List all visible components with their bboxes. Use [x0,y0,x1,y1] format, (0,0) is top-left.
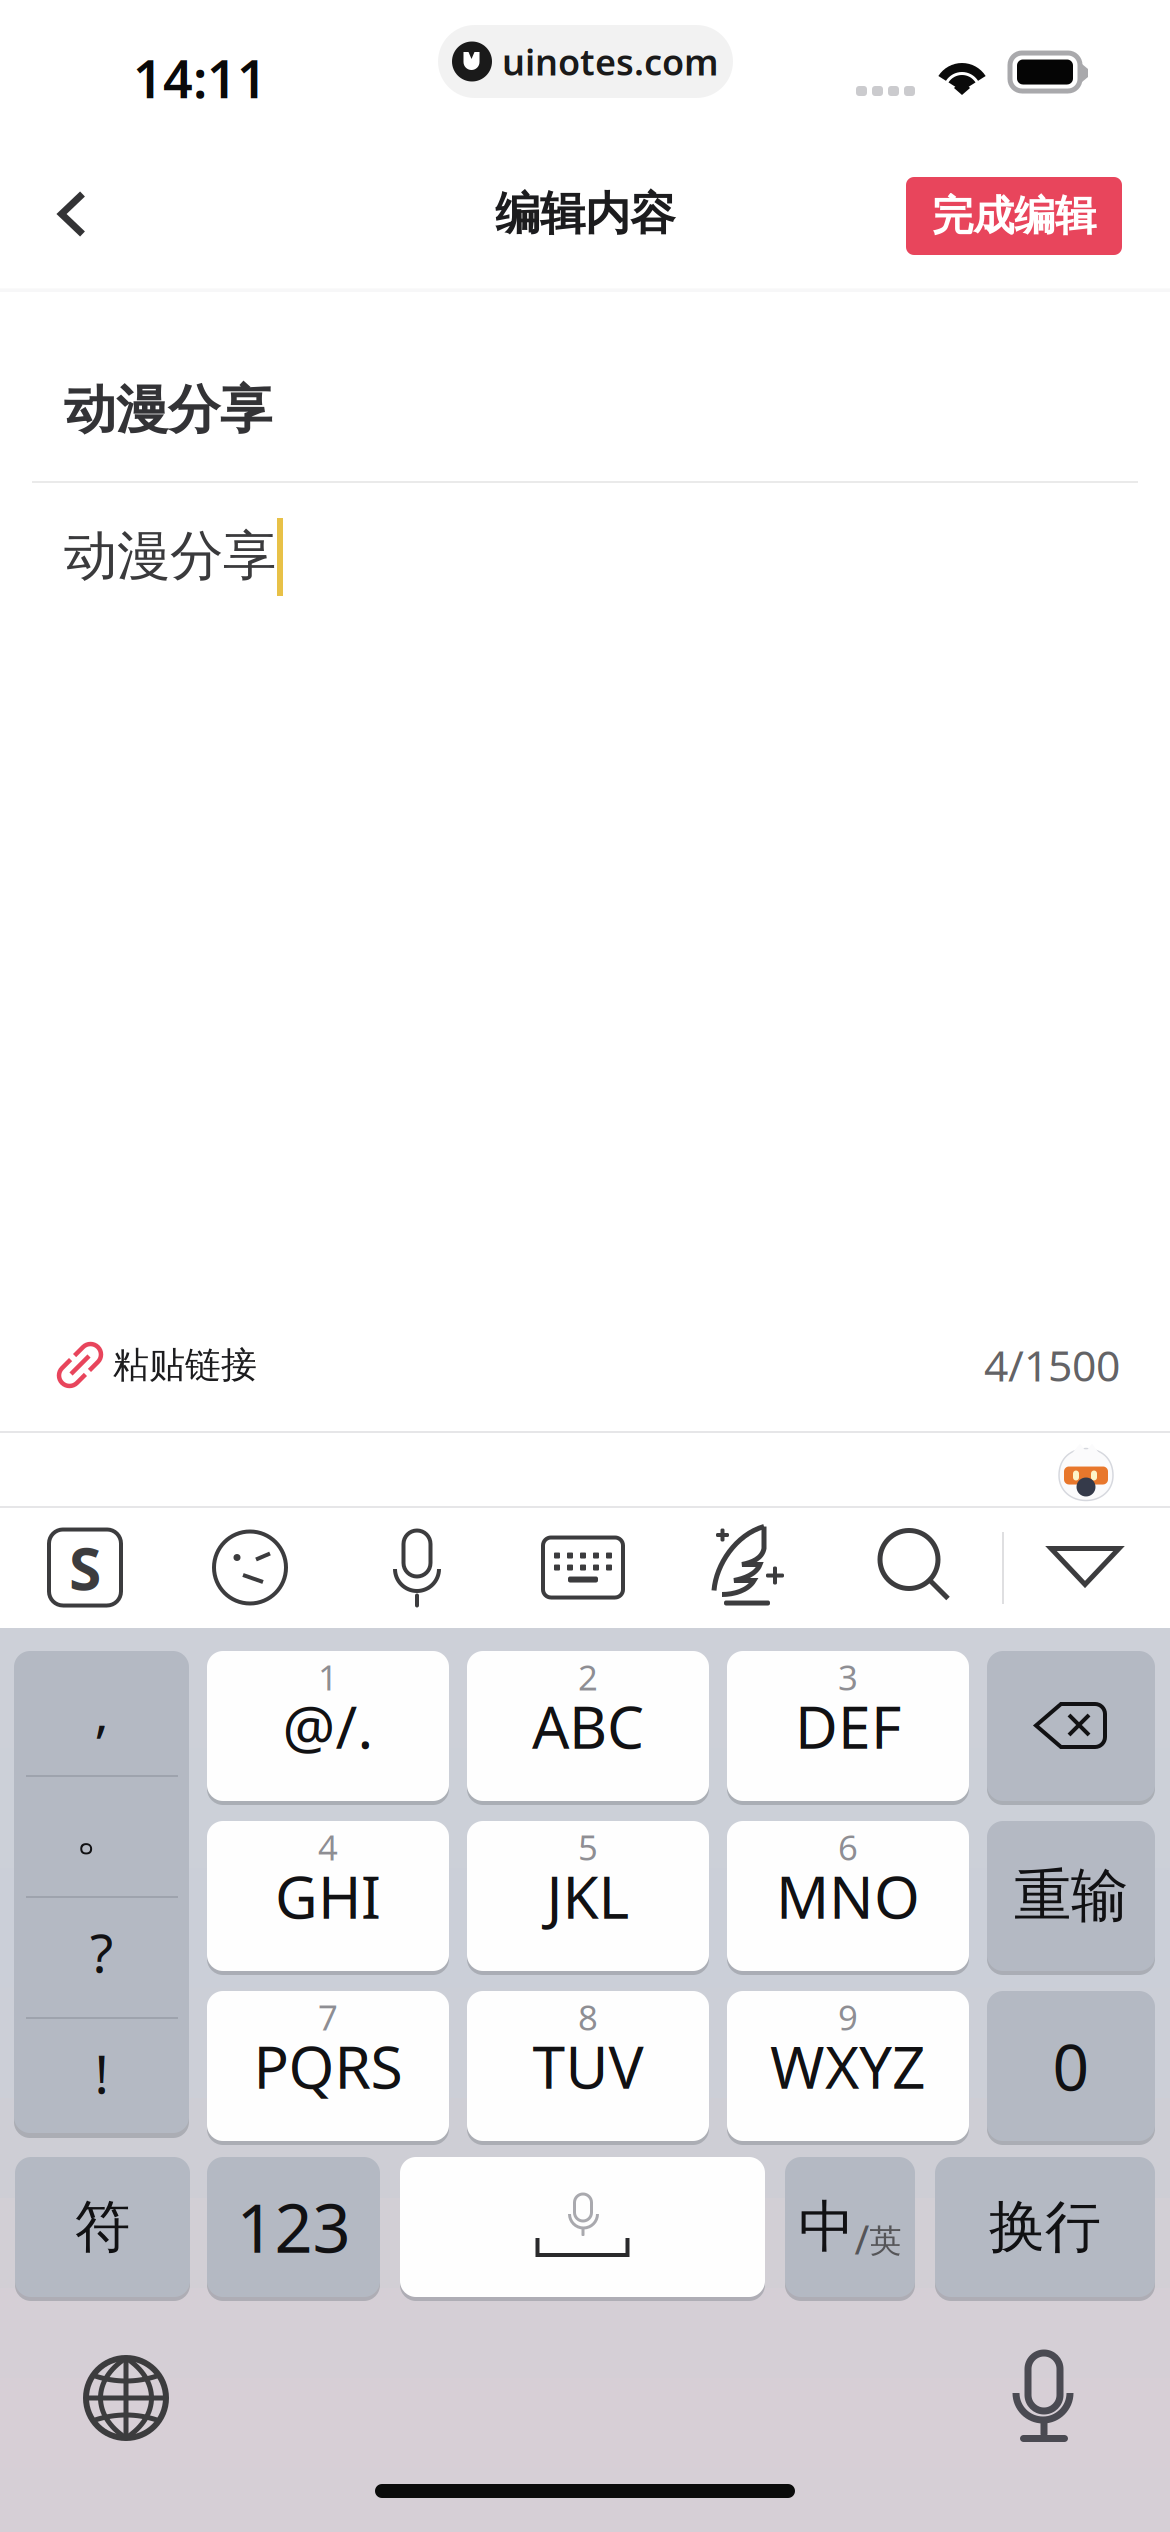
staticText: 4/1500 [984,1337,1120,1393]
staticText: 4 [318,1824,338,1870]
staticText: 动漫分享 [64,378,272,442]
button[interactable]: 123 [207,2157,380,2301]
button[interactable]: 1 [207,1651,449,1805]
staticText: @/. [282,1687,373,1765]
button[interactable]: Sogou assistant [1026,1431,1146,1508]
staticText: 0 [1052,2023,1089,2108]
button[interactable]: , [14,1651,189,2138]
staticText: uinotes.com [502,38,719,85]
button[interactable]: Hide keyboard [1010,1508,1160,1627]
staticText: 粘贴链接 [113,1343,257,1387]
staticText: / [854,2212,869,2265]
staticText: JKL [546,1857,629,1935]
staticText: 中 [798,2193,854,2261]
button[interactable]: 5 [467,1821,709,1975]
button[interactable]: 7 [207,1991,449,2145]
staticText: PQRS [253,2027,402,2105]
staticText: 英 [869,2221,901,2261]
button[interactable]: Sogou input [10,1508,160,1627]
button[interactable]: Search [842,1508,992,1627]
staticText: ! [94,2038,108,2108]
staticText: 3 [838,1654,858,1700]
staticText: 7 [318,1994,338,2040]
staticText: 5 [578,1824,598,1870]
button[interactable]: Switch keyboard [56,2328,196,2468]
button[interactable]: Emoji [175,1508,325,1627]
staticText: 符 [74,2193,130,2261]
button[interactable]: Keyboard layouts [508,1508,658,1627]
staticText: GHI [275,1857,381,1935]
button[interactable] [987,1651,1155,1805]
button[interactable]: Back [12,140,132,288]
staticText: 6 [838,1824,858,1870]
staticText: ? [90,1917,113,1987]
button[interactable]: 粘贴链接 [56,1320,346,1410]
button[interactable]: Dictate [974,2328,1114,2468]
staticText: 2 [578,1654,598,1700]
button[interactable]: 中 [785,2157,915,2301]
staticText: 。 [75,1798,128,1864]
button[interactable]: 完成编辑 [906,177,1122,255]
staticText: 换行 [989,2193,1101,2261]
button[interactable]: 符 [15,2157,190,2301]
staticText: S [69,1528,101,1606]
staticText: 完成编辑 [932,191,1096,241]
staticText: 编辑内容 [495,186,675,242]
button[interactable]: 9 [727,1991,969,2145]
button[interactable]: Handwriting [675,1508,825,1627]
staticText: WXYZ [770,2027,926,2105]
staticText: 重输 [1014,1861,1128,1931]
button[interactable]: 换行 [935,2157,1155,2301]
staticText: DEF [795,1687,901,1765]
staticText: 123 [236,2183,350,2271]
staticText: 8 [578,1994,598,2040]
staticText: 14:11 [133,43,267,113]
staticText: , [94,1676,108,1746]
button[interactable] [400,2157,765,2301]
staticText: 1 [318,1654,338,1700]
button[interactable]: 重输 [987,1821,1155,1975]
staticText: ABC [532,1687,644,1765]
button[interactable]: 2 [467,1651,709,1805]
staticText: TUV [532,2027,643,2105]
button[interactable]: Voice input [342,1508,492,1627]
staticText: MNO [776,1857,920,1935]
button[interactable]: 8 [467,1991,709,2145]
button[interactable]: 3 [727,1651,969,1805]
button[interactable]: 4 [207,1821,449,1975]
button[interactable]: 0 [987,1991,1155,2145]
staticText: 动漫分享 [64,523,276,589]
button[interactable]: 6 [727,1821,969,1975]
staticText: 9 [838,1994,858,2040]
